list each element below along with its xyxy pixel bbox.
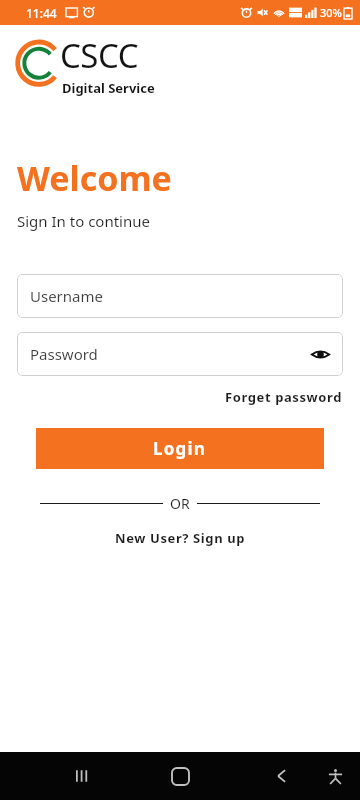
staticText: Username xyxy=(30,286,103,306)
button[interactable]: Username xyxy=(17,274,343,318)
button[interactable]: Accessibility xyxy=(318,759,352,793)
staticText: New User? Sign up xyxy=(115,529,246,547)
staticText: 30% xyxy=(320,5,342,20)
staticText: 11:44 xyxy=(26,5,57,21)
staticText: OR xyxy=(170,494,190,513)
staticText: CSCC xyxy=(60,33,139,78)
button[interactable]: Recent apps xyxy=(62,756,102,796)
button[interactable]: Back xyxy=(262,756,302,796)
staticText: Sign In to continue xyxy=(17,211,150,231)
button[interactable]: Home xyxy=(159,755,201,797)
button[interactable]: Password xyxy=(17,332,343,376)
staticText: Login xyxy=(153,437,207,460)
button[interactable]: New User? Sign up xyxy=(109,527,252,549)
staticText: Password xyxy=(30,344,98,364)
staticText: Digital Service xyxy=(62,79,155,97)
staticText: Welcome xyxy=(17,155,172,201)
button[interactable]: Login xyxy=(36,428,324,469)
button[interactable]: Forget password xyxy=(225,386,360,408)
button[interactable]: Show password xyxy=(307,341,333,367)
staticText: Forget password xyxy=(225,388,343,406)
